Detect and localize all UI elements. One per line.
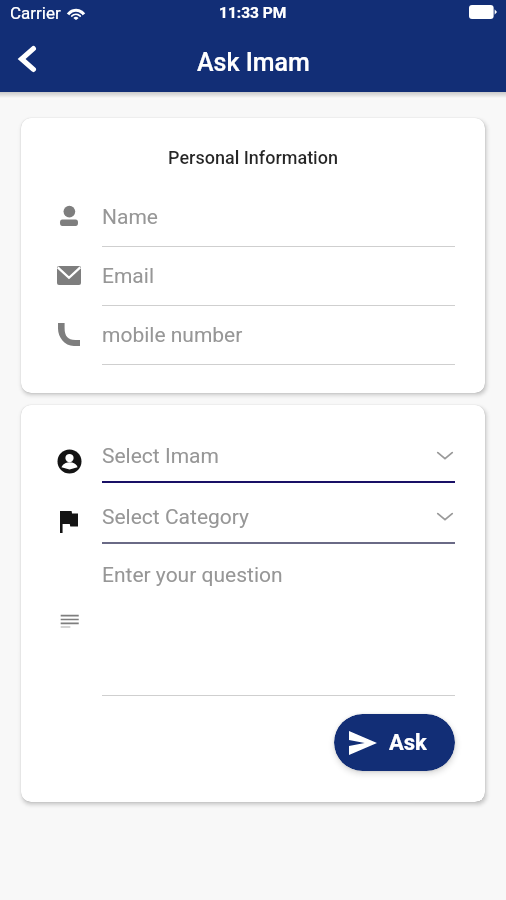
staticText: Carrier bbox=[10, 3, 61, 23]
staticText: Select Category bbox=[102, 505, 250, 530]
button[interactable]: Ask bbox=[334, 714, 455, 771]
button[interactable]: Name bbox=[21, 195, 485, 254]
staticText: Ask bbox=[389, 730, 427, 756]
staticText: Ask Imam bbox=[197, 48, 310, 77]
button[interactable]: Back bbox=[0, 32, 54, 92]
staticText: Select Imam bbox=[102, 444, 219, 469]
button[interactable]: Select Imam bbox=[21, 434, 485, 495]
button[interactable]: Select Category bbox=[21, 495, 485, 556]
button[interactable]: Email bbox=[21, 254, 485, 313]
staticText: 11:33 PM bbox=[219, 4, 287, 22]
staticText: Personal Information bbox=[21, 147, 485, 168]
staticText: Name bbox=[102, 205, 158, 230]
staticText: Enter your question bbox=[102, 563, 283, 588]
button[interactable]: mobile number bbox=[21, 313, 485, 372]
staticText: mobile number bbox=[102, 323, 243, 348]
staticText: Email bbox=[102, 264, 154, 289]
